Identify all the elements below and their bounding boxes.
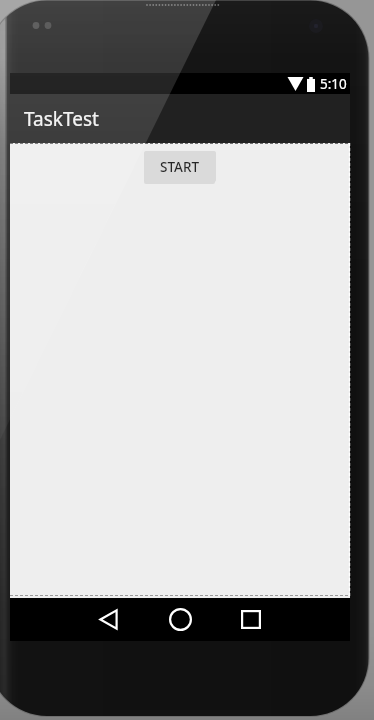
button[interactable]: START: [144, 151, 216, 182]
button[interactable]: Back: [88, 599, 128, 639]
button[interactable]: TaskTest: [10, 94, 350, 143]
staticText: TaskTest: [24, 106, 99, 132]
button[interactable]: Home: [160, 599, 200, 639]
staticText: 5:10: [320, 75, 347, 93]
button[interactable]: Recents: [231, 599, 271, 639]
staticText: START: [160, 158, 200, 176]
